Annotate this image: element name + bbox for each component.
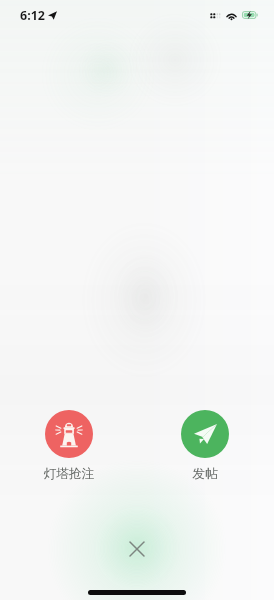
button[interactable]: Close (117, 529, 157, 569)
button[interactable]: 发帖 (157, 410, 253, 482)
staticText: 发帖 (192, 466, 218, 482)
staticText: 6:12 (20, 7, 45, 24)
staticText: 灯塔抢注 (43, 466, 95, 482)
button[interactable]: 灯塔抢注 (21, 410, 117, 482)
